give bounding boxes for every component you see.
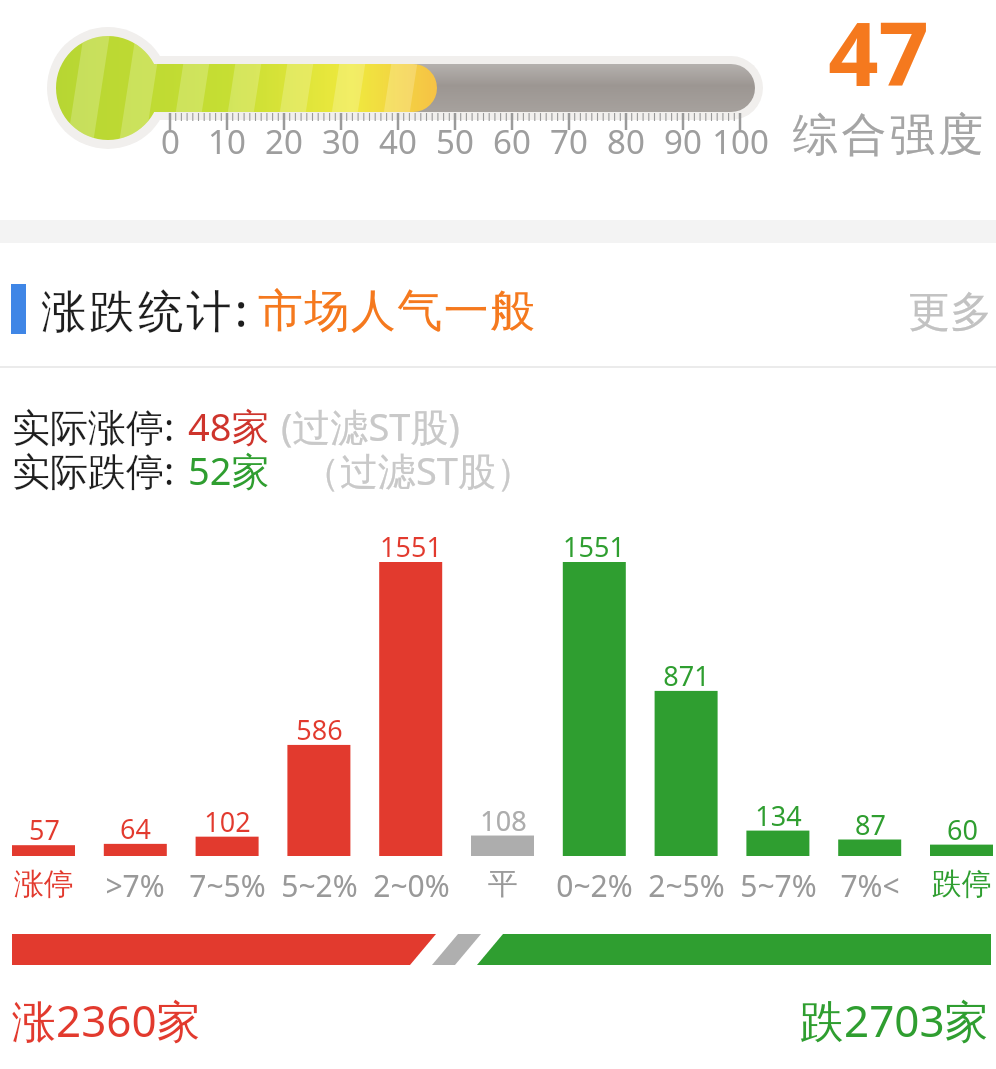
- staticText: 108: [480, 802, 527, 839]
- staticText: 60: [493, 119, 531, 164]
- staticText: 市场人气一般: [257, 283, 536, 340]
- staticText: 涨2360家: [12, 990, 201, 1050]
- staticText: 7%<: [840, 865, 900, 906]
- staticText: 2~5%: [648, 865, 725, 906]
- staticText: 70: [550, 119, 588, 164]
- staticText: 871: [663, 657, 710, 694]
- staticText: 5~7%: [740, 865, 817, 906]
- staticText: 1551: [380, 528, 442, 565]
- staticText: 5~2%: [281, 865, 358, 906]
- staticText: >7%: [105, 865, 165, 906]
- staticText: （过滤ST股）: [302, 444, 534, 496]
- staticText: 更多: [908, 286, 992, 339]
- staticText: 48家: [188, 400, 270, 452]
- staticText: 涨停: [14, 865, 74, 903]
- staticText: 综合强度: [791, 107, 985, 164]
- staticText: 52家: [188, 444, 270, 496]
- staticText: 100: [712, 119, 769, 164]
- staticText: 2~0%: [373, 865, 450, 906]
- staticText: 实际跌停:: [12, 444, 175, 496]
- staticText: 90: [664, 119, 702, 164]
- staticText: (过滤ST股): [281, 400, 460, 452]
- staticText: 实际涨停:: [12, 400, 175, 452]
- staticText: 跌2703家: [800, 990, 989, 1050]
- staticText: 102: [204, 803, 251, 840]
- staticText: 1551: [563, 528, 625, 565]
- staticText: 30: [322, 119, 360, 164]
- staticText: 平: [488, 865, 518, 903]
- staticText: 0: [161, 119, 180, 164]
- staticText: 40: [379, 119, 417, 164]
- staticText: 60: [947, 811, 978, 848]
- staticText: 7~5%: [189, 865, 266, 906]
- staticText: 涨跌统计:: [41, 279, 251, 340]
- staticText: 134: [755, 797, 802, 834]
- staticText: 80: [607, 119, 645, 164]
- staticText: 47: [828, 0, 929, 112]
- staticText: 20: [265, 119, 303, 164]
- staticText: 87: [855, 806, 886, 843]
- staticText: 57: [29, 811, 60, 848]
- button[interactable]: 更多: [886, 284, 992, 340]
- staticText: 50: [436, 119, 474, 164]
- staticText: 0~2%: [556, 865, 633, 906]
- staticText: 10: [208, 119, 246, 164]
- staticText: 跌停: [932, 865, 992, 903]
- staticText: 64: [120, 810, 151, 847]
- staticText: 586: [296, 711, 343, 748]
